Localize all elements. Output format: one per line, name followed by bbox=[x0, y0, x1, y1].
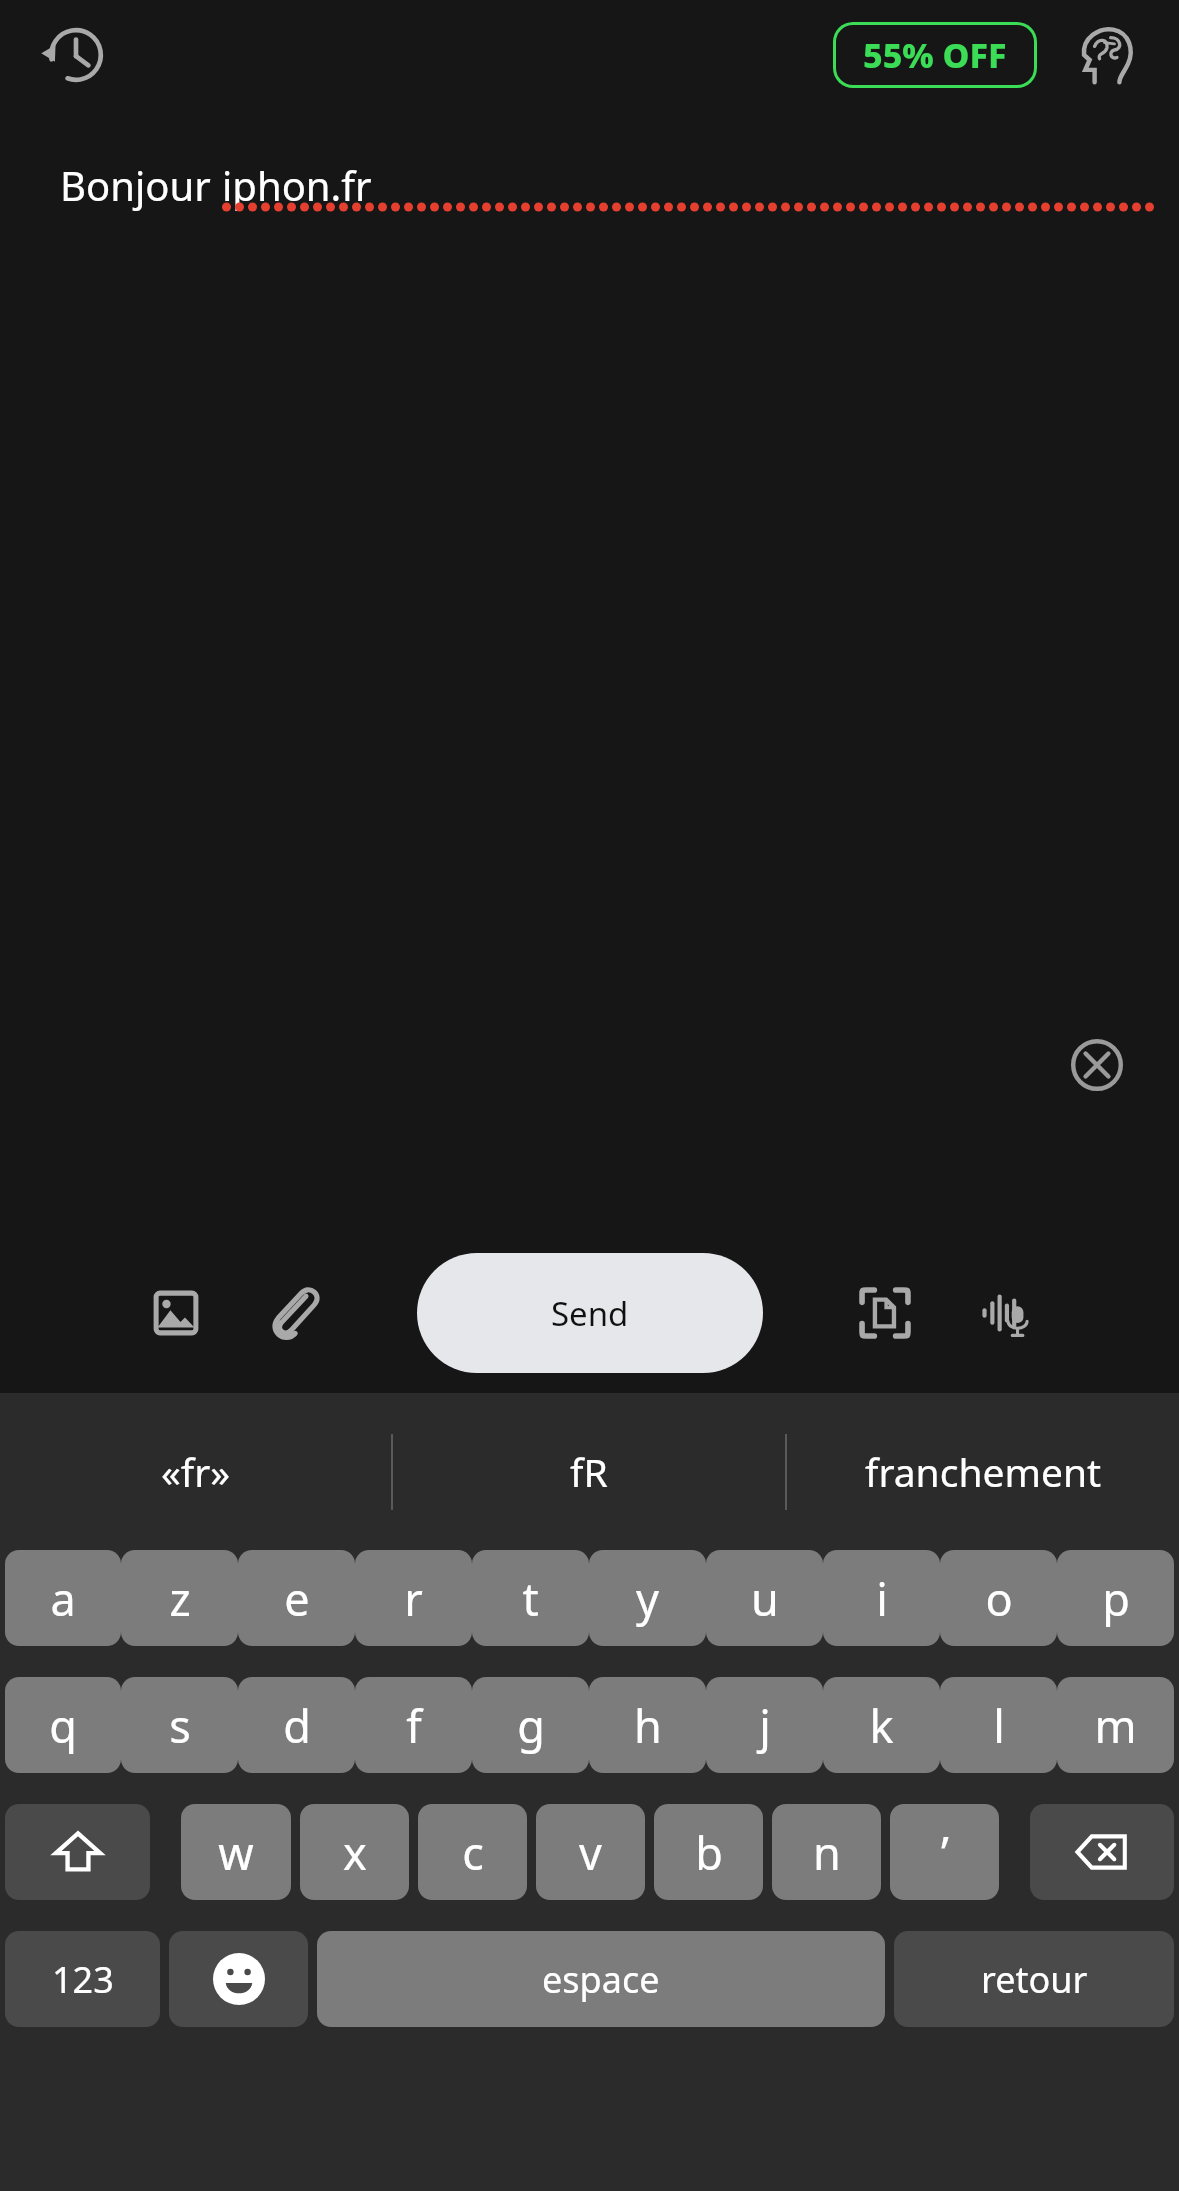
staticText: e bbox=[284, 1568, 310, 1629]
staticText: h bbox=[634, 1695, 662, 1756]
staticText: w bbox=[218, 1822, 254, 1883]
staticText: s bbox=[169, 1695, 191, 1756]
staticText: i bbox=[876, 1568, 888, 1629]
staticText: g bbox=[517, 1695, 545, 1756]
button[interactable]: z bbox=[121, 1550, 238, 1646]
button[interactable]: Shift bbox=[5, 1804, 150, 1900]
staticText: v bbox=[579, 1822, 602, 1883]
button[interactable]: Send bbox=[417, 1253, 763, 1373]
button[interactable]: retour bbox=[894, 1931, 1174, 2027]
button[interactable]: y bbox=[589, 1550, 706, 1646]
staticText: franchement bbox=[865, 1445, 1102, 1498]
staticText: c bbox=[462, 1822, 484, 1883]
staticText: o bbox=[985, 1568, 1013, 1629]
button[interactable]: s bbox=[121, 1677, 238, 1773]
staticText: ’ bbox=[941, 1822, 949, 1883]
button[interactable]: AI assistant bbox=[1059, 7, 1155, 103]
staticText: espace bbox=[542, 1955, 660, 2004]
button[interactable]: m bbox=[1057, 1677, 1174, 1773]
staticText: u bbox=[751, 1568, 779, 1629]
button[interactable]: espace bbox=[317, 1931, 885, 2027]
staticText: d bbox=[283, 1695, 311, 1756]
button[interactable]: ’ bbox=[890, 1804, 999, 1900]
staticText: Send bbox=[551, 1291, 629, 1336]
button[interactable]: Clear text bbox=[1059, 1027, 1135, 1103]
button[interactable]: 123 bbox=[5, 1931, 160, 2027]
staticText: n bbox=[813, 1822, 841, 1883]
button[interactable]: Voice input bbox=[957, 1267, 1049, 1359]
button[interactable]: i bbox=[823, 1550, 940, 1646]
button[interactable]: Emoji bbox=[169, 1931, 308, 2027]
staticText: 123 bbox=[52, 1955, 114, 2004]
staticText: x bbox=[343, 1822, 367, 1883]
staticText: retour bbox=[981, 1955, 1088, 2004]
staticText: m bbox=[1094, 1695, 1137, 1756]
button[interactable]: franchement bbox=[787, 1393, 1179, 1550]
button[interactable]: «fr» bbox=[0, 1393, 391, 1550]
staticText: fR bbox=[570, 1445, 608, 1498]
button[interactable]: Scan document bbox=[839, 1267, 931, 1359]
button[interactable]: u bbox=[706, 1550, 823, 1646]
staticText: l bbox=[993, 1695, 1005, 1756]
button[interactable]: j bbox=[706, 1677, 823, 1773]
button[interactable]: n bbox=[772, 1804, 881, 1900]
button[interactable]: Backspace bbox=[1030, 1804, 1174, 1900]
button[interactable]: h bbox=[589, 1677, 706, 1773]
button[interactable]: g bbox=[472, 1677, 589, 1773]
staticText: iphon.fr bbox=[222, 158, 372, 212]
button[interactable]: r bbox=[355, 1550, 472, 1646]
button[interactable]: d bbox=[238, 1677, 355, 1773]
staticText: j bbox=[759, 1695, 771, 1756]
staticText: r bbox=[404, 1568, 423, 1629]
button[interactable]: t bbox=[472, 1550, 589, 1646]
staticText: y bbox=[636, 1568, 659, 1629]
button[interactable]: k bbox=[823, 1677, 940, 1773]
button[interactable]: f bbox=[355, 1677, 472, 1773]
button[interactable]: History bbox=[28, 7, 124, 103]
button[interactable]: v bbox=[536, 1804, 645, 1900]
staticText: «fr» bbox=[161, 1445, 231, 1498]
button[interactable]: o bbox=[940, 1550, 1057, 1646]
button[interactable]: x bbox=[300, 1804, 409, 1900]
button[interactable]: a bbox=[5, 1550, 121, 1646]
staticText: z bbox=[169, 1568, 191, 1629]
staticText: Bonjour bbox=[60, 158, 222, 212]
button[interactable]: fR bbox=[393, 1393, 785, 1550]
button[interactable]: Attach file bbox=[248, 1267, 340, 1359]
staticText: q bbox=[49, 1695, 77, 1756]
staticText: f bbox=[406, 1695, 422, 1756]
staticText: b bbox=[695, 1822, 723, 1883]
button[interactable]: b bbox=[654, 1804, 763, 1900]
staticText: a bbox=[50, 1568, 76, 1629]
button[interactable]: Add image bbox=[130, 1267, 222, 1359]
button[interactable]: w bbox=[181, 1804, 291, 1900]
button[interactable]: p bbox=[1057, 1550, 1174, 1646]
button[interactable]: l bbox=[940, 1677, 1057, 1773]
staticText: k bbox=[869, 1695, 894, 1756]
button[interactable]: c bbox=[418, 1804, 527, 1900]
staticText: t bbox=[522, 1568, 539, 1629]
button[interactable]: e bbox=[238, 1550, 355, 1646]
staticText: p bbox=[1102, 1568, 1130, 1629]
staticText: 55% OFF bbox=[863, 32, 1007, 78]
button[interactable]: 55% OFF bbox=[833, 22, 1037, 88]
button[interactable]: q bbox=[5, 1677, 121, 1773]
